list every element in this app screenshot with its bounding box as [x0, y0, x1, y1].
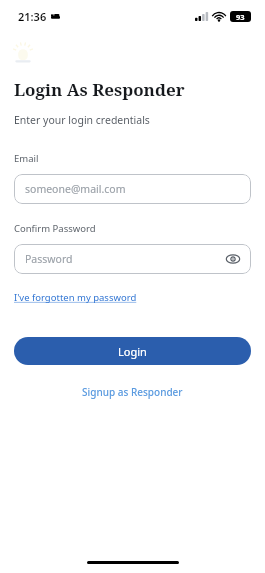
staticText: 21:36 — [18, 9, 47, 24]
staticText: I've forgotten my password — [14, 291, 137, 304]
staticText: Password — [25, 252, 73, 266]
staticText: someone@mail.com — [25, 182, 126, 196]
staticText: 93 — [236, 12, 245, 22]
staticText: Enter your login credentials — [14, 113, 150, 127]
staticText: Login — [118, 344, 147, 359]
staticText: Email — [14, 152, 39, 165]
staticText: Confirm Password — [14, 222, 96, 235]
staticText: Login As Responder — [14, 78, 185, 101]
staticText: Signup as Responder — [82, 385, 183, 399]
button[interactable]: Password — [14, 244, 251, 274]
button[interactable]: Login — [14, 337, 251, 365]
button[interactable]: Show password — [224, 250, 242, 268]
button[interactable]: Signup as Responder — [78, 383, 187, 401]
button[interactable]: someone@mail.com — [14, 174, 251, 204]
button[interactable]: I've forgotten my password — [14, 290, 137, 305]
